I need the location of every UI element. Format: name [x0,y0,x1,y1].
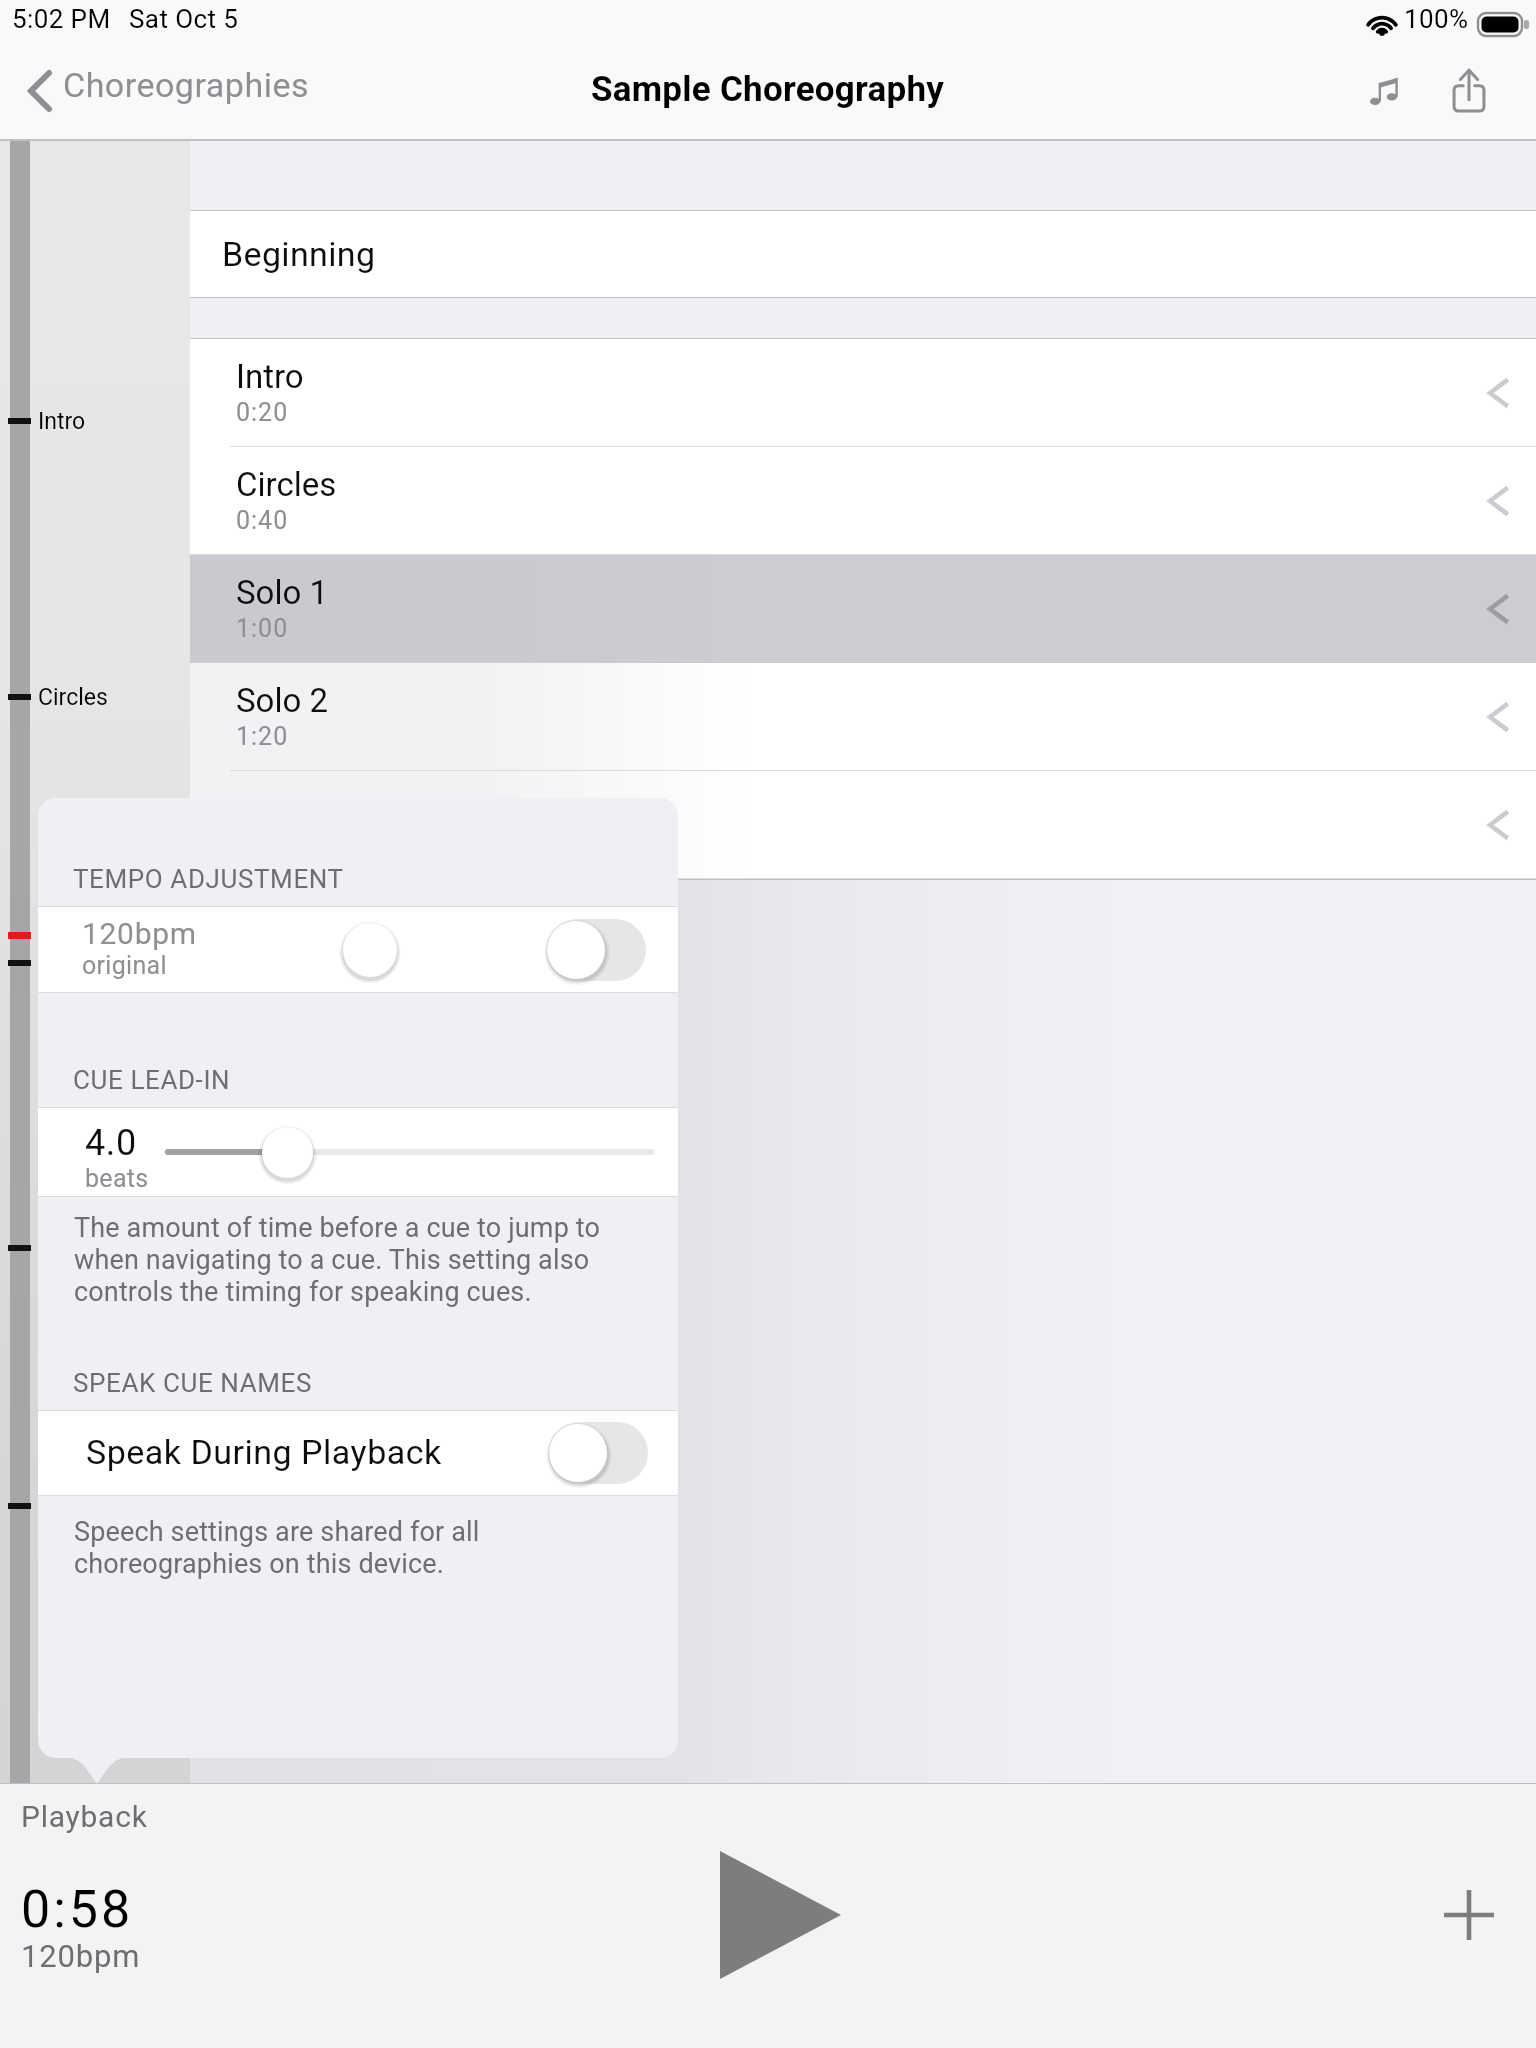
staticText: Intro [236,357,304,396]
staticText: Sample Choreography [591,69,945,110]
staticText: Choreographies [63,65,309,105]
button[interactable]: Music [1348,56,1418,126]
staticText: Intro [38,408,86,435]
button[interactable]: 120bpm [38,907,678,992]
button[interactable] [548,1422,648,1484]
staticText: Circles [236,465,337,504]
staticText: 1:20 [236,722,289,751]
staticText: 0:20 [236,398,289,427]
staticText: original [82,951,167,980]
button[interactable] [546,919,646,981]
staticText: 0:58 [21,1879,134,1940]
button[interactable]: 4.0 [38,1108,678,1196]
staticText: 0:40 [236,506,289,535]
staticText: Playback [21,1799,148,1834]
staticText: 120bpm [21,1938,141,1974]
staticText: 1:00 [236,614,289,643]
button[interactable]: Beginning [190,211,1536,297]
staticText: CUE LEAD-IN [73,1065,231,1095]
staticText: Solo 1 [236,573,328,612]
staticText: TEMPO ADJUSTMENT [73,864,344,894]
button[interactable] [190,339,1536,447]
staticText: Circles [38,684,108,711]
staticText: 4.0 [85,1122,137,1164]
staticText: Sat Oct 5 [129,4,239,34]
staticText: 100% [1404,4,1469,34]
button[interactable]: Share [1434,56,1504,126]
staticText: SPEAK CUE NAMES [73,1368,313,1398]
staticText: Beginning [222,234,376,274]
button[interactable]: Add cue [1419,1865,1519,1965]
staticText: Speak During Playback [86,1432,442,1472]
button[interactable] [190,771,1536,879]
button[interactable]: Speak During Playback [38,1411,678,1495]
button[interactable]: Play [700,1835,860,1995]
staticText: 120bpm [82,916,197,951]
staticText: beats [85,1164,149,1193]
button[interactable] [190,555,1536,663]
staticText: 5:02 PM [12,4,111,34]
staticText: Solo 2 [236,681,328,720]
button[interactable] [190,663,1536,771]
staticText: The amount of time before a cue to jump … [74,1212,601,1308]
button[interactable]: Choreographies [23,64,309,106]
button[interactable] [190,447,1536,555]
staticText: Speech settings are shared for all chore… [74,1516,480,1580]
